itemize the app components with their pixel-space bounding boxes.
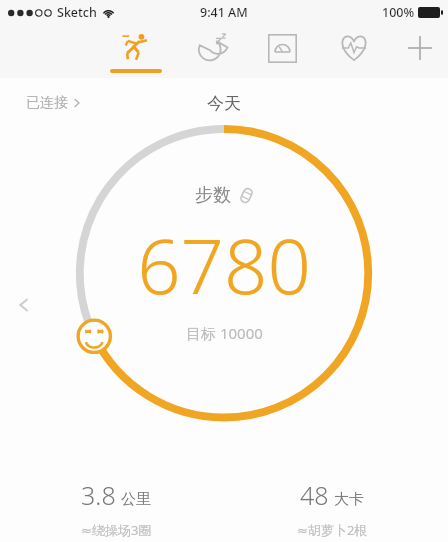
staticText: 公里 — [121, 490, 151, 509]
staticText: 目标 10000 — [186, 323, 263, 343]
button[interactable]: 3.8 — [16, 478, 216, 539]
staticText: Sketch — [57, 4, 97, 21]
staticText: 已连接 — [26, 94, 68, 112]
button[interactable]: Heart rate — [318, 24, 390, 78]
button[interactable]: Previous day — [6, 287, 42, 323]
button[interactable]: Weight — [246, 24, 318, 78]
staticText: 100% — [382, 4, 415, 21]
staticText: 今天 — [207, 93, 241, 114]
staticText: 步数 — [195, 184, 231, 207]
button[interactable]: 48 — [232, 478, 432, 539]
staticText: 3.8 — [81, 478, 116, 512]
staticText: 大卡 — [334, 490, 364, 509]
staticText: 6780 — [137, 213, 311, 317]
button[interactable]: Sleep — [176, 24, 246, 78]
button[interactable]: Steps — [96, 24, 176, 78]
staticText: 9:41 AM — [200, 4, 248, 21]
staticText: ≈绕操场3圈 — [81, 521, 152, 539]
button[interactable]: Add — [392, 24, 448, 78]
button[interactable]: 已连接 — [26, 94, 81, 112]
staticText: 48 — [300, 478, 329, 512]
staticText: ≈胡萝卜2根 — [297, 521, 368, 539]
